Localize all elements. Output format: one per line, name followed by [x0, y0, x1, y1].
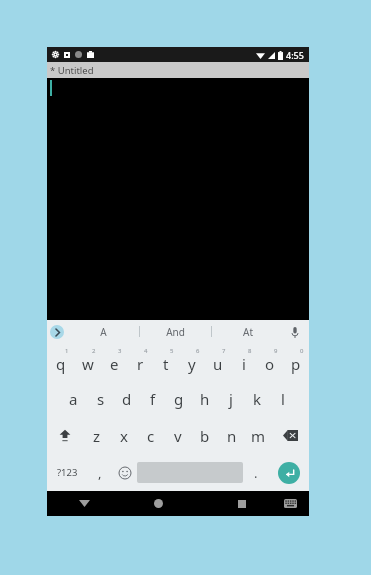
button[interactable]: b	[191, 417, 218, 454]
button[interactable]: Hide keyboard	[47, 491, 121, 516]
button[interactable]: 8	[231, 343, 257, 380]
staticText: 3	[118, 347, 122, 355]
staticText: u	[213, 354, 223, 374]
button[interactable]: 9	[257, 343, 283, 380]
button[interactable]: x	[110, 417, 137, 454]
staticText: e	[110, 354, 119, 374]
button[interactable]: 0	[283, 343, 309, 380]
staticText: y	[188, 354, 196, 374]
button[interactable]: Voice input	[287, 324, 303, 340]
button[interactable]: v	[164, 417, 191, 454]
staticText: z	[93, 426, 101, 446]
staticText: x	[120, 426, 128, 446]
staticText: 4	[144, 347, 148, 355]
staticText: 4:55	[286, 49, 304, 61]
button[interactable]: g	[166, 380, 192, 417]
button[interactable]: f	[140, 380, 166, 417]
button[interactable]: And	[140, 320, 211, 343]
staticText: 0	[300, 347, 304, 355]
button[interactable]: 3	[101, 343, 127, 380]
button[interactable]: m	[245, 417, 272, 454]
staticText: l	[281, 389, 285, 409]
button[interactable]: c	[137, 417, 164, 454]
button[interactable]: Emoji	[112, 454, 137, 491]
staticText: 1	[65, 347, 69, 355]
button[interactable]: j	[218, 380, 244, 417]
button[interactable]: ?123	[47, 454, 87, 491]
button[interactable]: h	[192, 380, 218, 417]
staticText: 9	[274, 347, 278, 355]
staticText: t	[163, 354, 169, 374]
staticText: q	[56, 354, 66, 374]
staticText: c	[147, 426, 155, 446]
staticText: b	[200, 426, 210, 446]
staticText: k	[253, 389, 262, 409]
button[interactable]: ,	[87, 454, 112, 491]
button[interactable]: Recent apps	[196, 491, 271, 516]
staticText: 7	[222, 347, 226, 355]
staticText: f	[150, 389, 156, 409]
button[interactable]: Expand suggestions	[50, 325, 64, 339]
button[interactable]: 1	[47, 343, 74, 380]
staticText: s	[97, 389, 105, 409]
staticText: g	[174, 389, 184, 409]
staticText: w	[82, 354, 94, 374]
button[interactable]: Enter	[278, 462, 300, 484]
staticText: ,	[98, 464, 102, 482]
staticText: j	[229, 389, 233, 409]
button[interactable]: .	[243, 454, 268, 491]
staticText: And	[166, 325, 185, 339]
button[interactable]: Switch keyboard	[271, 491, 309, 516]
button[interactable]: z	[83, 417, 110, 454]
button[interactable]: l	[270, 380, 296, 417]
button[interactable]: 7	[205, 343, 231, 380]
button[interactable]: 6	[179, 343, 205, 380]
staticText: i	[242, 354, 246, 374]
staticText: n	[227, 426, 237, 446]
staticText: o	[265, 354, 275, 374]
button[interactable]: k	[244, 380, 270, 417]
button[interactable]: s	[87, 380, 114, 417]
staticText: h	[200, 389, 210, 409]
staticText: * Untitled	[50, 64, 94, 77]
button[interactable]: Backspace	[272, 417, 309, 454]
button[interactable]: a	[60, 380, 87, 417]
staticText: ?123	[57, 466, 78, 479]
button[interactable]: At	[212, 320, 283, 343]
staticText: 5	[170, 347, 174, 355]
button[interactable]: * Untitled	[47, 62, 309, 78]
staticText: p	[291, 354, 301, 374]
staticText: 6	[196, 347, 200, 355]
button[interactable]: 5	[153, 343, 179, 380]
button[interactable]: 2	[74, 343, 101, 380]
button[interactable]: n	[218, 417, 245, 454]
staticText: 2	[92, 347, 96, 355]
staticText: v	[174, 426, 182, 446]
button[interactable]: A	[67, 320, 139, 343]
staticText: r	[137, 354, 144, 374]
staticText: a	[69, 389, 78, 409]
button[interactable]: 4	[127, 343, 153, 380]
staticText: m	[251, 426, 266, 446]
staticText: At	[243, 325, 253, 339]
staticText: 8	[248, 347, 252, 355]
staticText: A	[100, 325, 107, 339]
staticText: d	[122, 389, 132, 409]
staticText: .	[254, 464, 258, 482]
button[interactable]: d	[114, 380, 140, 417]
button[interactable]: Home	[121, 491, 196, 516]
button[interactable]: Shift	[47, 417, 83, 454]
